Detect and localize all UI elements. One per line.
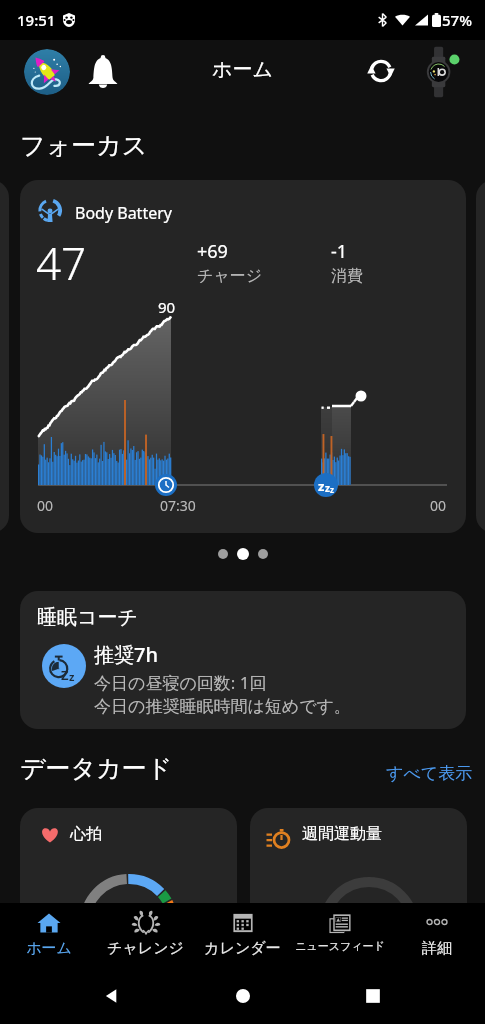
staticText: -1: [331, 239, 348, 264]
staticText: 57%: [442, 10, 472, 30]
staticText: 90: [158, 297, 176, 317]
button[interactable]: Sync: [365, 55, 397, 87]
button[interactable]: Recents: [355, 978, 391, 1014]
staticText: Body Battery: [75, 202, 172, 224]
staticText: 00: [37, 496, 54, 515]
staticText: 推奨7h: [94, 641, 158, 668]
staticText: z: [69, 669, 75, 684]
staticText: データカード: [20, 753, 173, 784]
button[interactable]: カレンダー: [194, 903, 291, 968]
staticText: フォーカス: [20, 130, 148, 161]
staticText: 今日の推奨睡眠時間は短めです。: [94, 696, 351, 717]
button[interactable]: 心拍: [20, 808, 237, 968]
staticText: Z: [61, 666, 69, 684]
staticText: +69: [197, 239, 228, 264]
staticText: 19:51: [17, 10, 56, 30]
staticText: z: [330, 484, 334, 495]
button[interactable]: 睡眠コーチ: [20, 591, 466, 729]
button[interactable]: Home: [225, 978, 261, 1014]
button[interactable]: すべて表示: [386, 763, 473, 784]
button[interactable]: Back: [94, 978, 130, 1014]
button[interactable]: Body Battery: [20, 180, 466, 533]
button[interactable]: Device: [417, 48, 465, 96]
staticText: カレンダー: [204, 939, 281, 958]
button[interactable]: Profile: [24, 49, 70, 95]
staticText: すべて表示: [386, 763, 473, 784]
staticText: 00: [430, 496, 447, 515]
staticText: 睡眠コーチ: [37, 605, 138, 630]
staticText: 47: [36, 233, 87, 293]
staticText: 心拍: [70, 824, 102, 844]
button[interactable]: ホーム: [0, 903, 97, 968]
staticText: 消費: [331, 266, 363, 286]
button[interactable]: 週間運動量: [250, 808, 467, 968]
staticText: ホーム: [26, 939, 72, 958]
staticText: 今日の昼寝の回数: 1回: [94, 671, 267, 694]
button[interactable]: チャレンジ: [97, 903, 194, 968]
staticText: チャレンジ: [107, 939, 184, 958]
button[interactable]: 詳細: [388, 903, 485, 968]
staticText: 07:30: [160, 496, 196, 515]
staticText: z: [318, 477, 325, 495]
staticText: ホーム: [212, 57, 273, 82]
button[interactable]: ニュースフィード: [291, 903, 388, 968]
staticText: チャージ: [197, 266, 263, 286]
staticText: ニュースフィード: [295, 939, 385, 953]
staticText: z: [325, 481, 330, 495]
staticText: 週間運動量: [302, 824, 382, 844]
button[interactable]: Notifications: [88, 54, 118, 90]
staticText: 詳細: [422, 939, 452, 958]
